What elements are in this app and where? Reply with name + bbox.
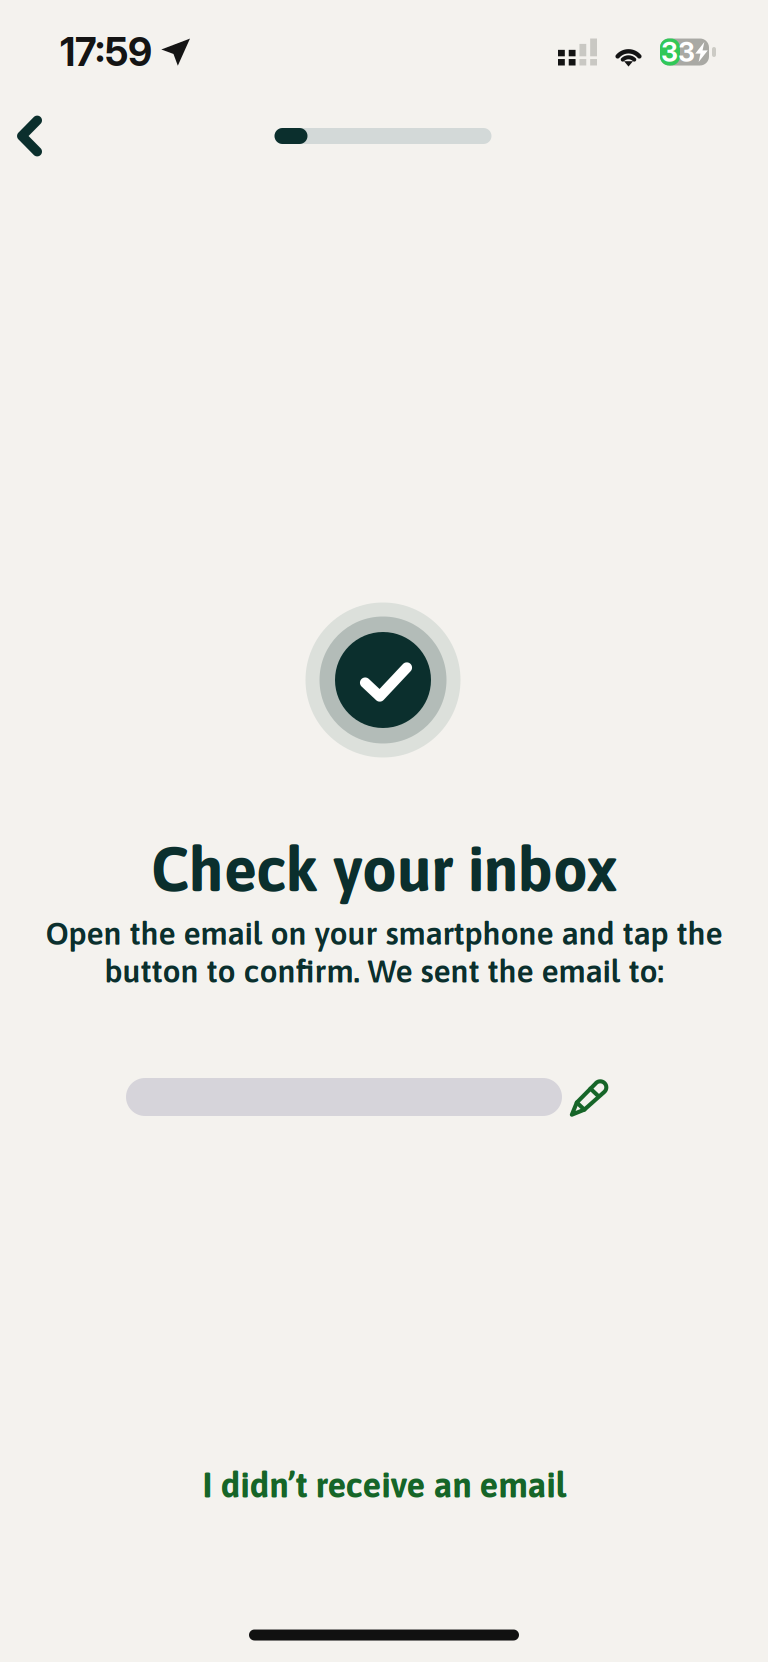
staticText: Open the email on your smartphone and ta… (45, 915, 722, 951)
staticText: I didn’t receive an email (202, 1465, 565, 1505)
button[interactable]: Back (0, 100, 68, 172)
staticText: 17:59 (60, 29, 152, 75)
staticText: Check your inbox (151, 834, 617, 904)
button[interactable]: I didn’t receive an email (169, 1451, 599, 1519)
staticText: 33 (661, 36, 695, 68)
staticText: button to confirm. We sent the email to: (104, 952, 663, 989)
button[interactable]: Edit email address (558, 1063, 624, 1129)
